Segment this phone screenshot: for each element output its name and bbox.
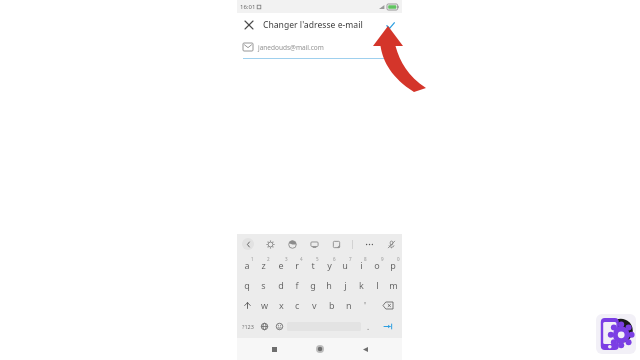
button[interactable] <box>287 319 361 333</box>
staticText: m <box>389 279 398 291</box>
staticText: c <box>295 299 300 311</box>
button[interactable]: y <box>321 255 337 275</box>
button[interactable]: f <box>289 275 305 295</box>
staticText: 0 <box>397 256 400 262</box>
button[interactable]: Back <box>242 238 254 250</box>
staticText: 8 <box>364 256 367 262</box>
button[interactable]: w <box>257 295 273 315</box>
button[interactable]: e <box>272 255 289 275</box>
button[interactable]: m <box>385 275 401 295</box>
button[interactable]: l <box>369 275 385 295</box>
staticText: janedouds@mail.com <box>258 43 324 52</box>
staticText: Changer l'adresse e-mail <box>263 19 363 31</box>
staticText: 5 <box>316 256 319 262</box>
staticText: 16:01 <box>240 3 256 11</box>
button[interactable]: c <box>289 295 306 315</box>
staticText: 6 <box>333 256 336 262</box>
button[interactable]: Sticker <box>308 238 320 250</box>
staticText: 2 <box>267 256 270 262</box>
staticText: t <box>311 259 315 271</box>
button[interactable]: g <box>305 275 321 295</box>
button[interactable]: Language <box>257 315 272 337</box>
staticText: v <box>312 299 317 311</box>
button[interactable]: Home <box>312 341 328 357</box>
staticText: d <box>278 279 284 291</box>
button[interactable]: x <box>273 295 289 315</box>
button[interactable]: n <box>340 295 357 315</box>
staticText: e <box>278 259 284 271</box>
button[interactable]: Confirm <box>382 17 398 33</box>
staticText: l <box>376 279 379 291</box>
staticText: r <box>295 259 299 271</box>
button[interactable]: p <box>385 255 401 275</box>
staticText: 4 <box>300 256 303 262</box>
button[interactable]: More <box>363 238 375 250</box>
button[interactable]: Settings <box>264 238 276 250</box>
staticText: f <box>295 279 299 291</box>
button[interactable]: Emoji <box>272 315 287 337</box>
staticText: b <box>329 299 335 311</box>
button[interactable]: Next <box>376 315 400 337</box>
staticText: 1 <box>251 256 254 262</box>
button[interactable]: h <box>321 275 337 295</box>
button[interactable]: u <box>337 255 353 275</box>
button[interactable]: a <box>238 255 255 275</box>
button[interactable]: Shift <box>238 295 257 315</box>
staticText: z <box>261 259 266 271</box>
button[interactable]: d <box>272 275 289 295</box>
staticText: p <box>390 259 396 271</box>
button[interactable]: Backspace <box>374 295 401 315</box>
button[interactable]: i <box>353 255 369 275</box>
staticText: k <box>359 279 364 291</box>
button[interactable]: ' <box>357 295 374 315</box>
staticText: g <box>310 279 316 291</box>
staticText: j <box>344 279 347 291</box>
button[interactable]: z <box>255 255 272 275</box>
staticText: 7 <box>349 256 352 262</box>
staticText: 3 <box>285 256 288 262</box>
staticText: w <box>261 299 269 311</box>
staticText: i <box>360 259 363 271</box>
staticText: u <box>342 259 348 271</box>
staticText: ' <box>364 299 367 311</box>
button[interactable]: janedouds@mail.com <box>243 36 396 58</box>
button[interactable]: Logo <box>596 314 636 354</box>
staticText: 9 <box>381 256 384 262</box>
button[interactable]: Back <box>357 341 373 357</box>
staticText: s <box>261 279 266 291</box>
button[interactable]: s <box>255 275 272 295</box>
staticText: ?123 <box>242 323 254 330</box>
button[interactable]: Clipboard <box>330 238 342 250</box>
staticText: . <box>367 321 370 332</box>
button[interactable]: q <box>238 275 255 295</box>
button[interactable]: o <box>369 255 385 275</box>
staticText: h <box>326 279 332 291</box>
button[interactable]: b <box>323 295 340 315</box>
button[interactable]: t <box>305 255 321 275</box>
button[interactable]: Theme <box>286 238 298 250</box>
button[interactable]: v <box>306 295 323 315</box>
staticText: n <box>346 299 352 311</box>
button[interactable]: k <box>353 275 369 295</box>
button[interactable]: Close <box>241 17 257 33</box>
button[interactable]: r <box>289 255 305 275</box>
staticText: o <box>374 259 380 271</box>
button[interactable]: Voice input off <box>385 238 397 250</box>
button[interactable]: ?123 <box>239 315 257 337</box>
staticText: a <box>244 259 250 271</box>
button[interactable]: Recents <box>266 341 282 357</box>
staticText: y <box>327 259 332 271</box>
staticText: x <box>279 299 284 311</box>
button[interactable]: j <box>337 275 353 295</box>
button[interactable]: . <box>361 315 376 337</box>
staticText: q <box>244 279 250 291</box>
